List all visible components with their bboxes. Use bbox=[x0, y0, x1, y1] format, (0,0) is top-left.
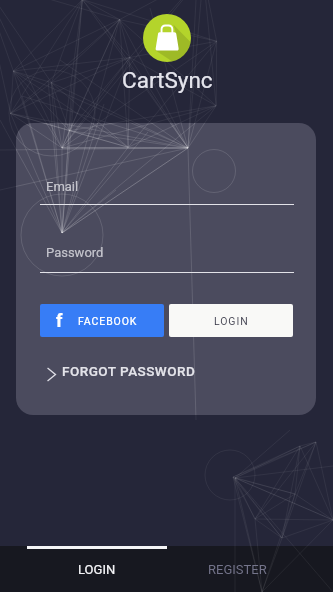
staticText: Email bbox=[46, 179, 79, 194]
other: CartSync logo bbox=[143, 14, 191, 62]
staticText: CartSync bbox=[122, 67, 213, 93]
button[interactable]: REGISTER bbox=[167, 546, 307, 592]
staticText: LOGIN bbox=[214, 315, 249, 327]
staticText: FACEBOOK bbox=[78, 315, 138, 327]
button[interactable]: f bbox=[40, 304, 164, 337]
staticText: FORGOT PASSWORD bbox=[62, 363, 196, 379]
button[interactable]: LOGIN bbox=[27, 546, 167, 592]
staticText: Password bbox=[46, 245, 104, 260]
staticText: f bbox=[56, 310, 63, 331]
button[interactable]: LOGIN bbox=[169, 304, 293, 337]
staticText: REGISTER bbox=[208, 562, 267, 577]
button[interactable]: FORGOT PASSWORD bbox=[47, 358, 206, 384]
staticText: LOGIN bbox=[78, 562, 116, 577]
